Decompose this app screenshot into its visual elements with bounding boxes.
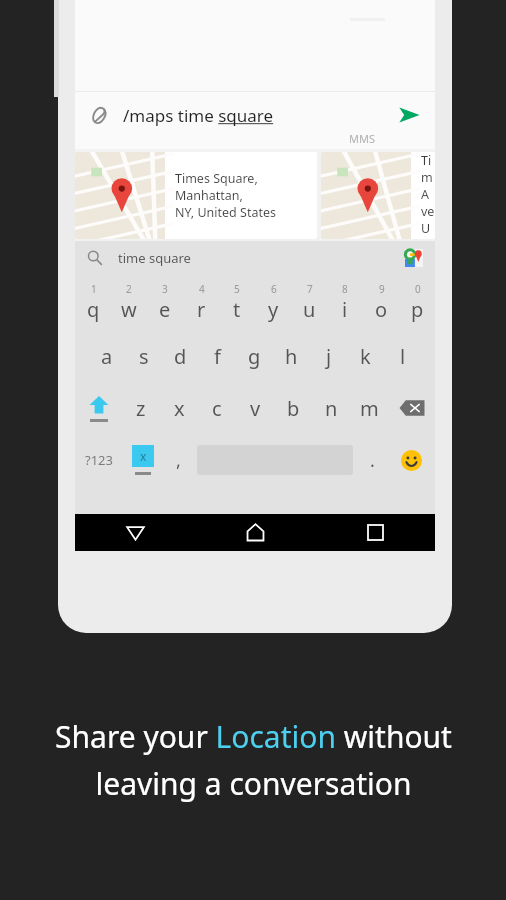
button[interactable]: 6 [255,274,291,330]
staticText: , [176,448,181,473]
button[interactable]: v [236,382,274,434]
button[interactable]: Times Square, Manhattan, NY, United Stat… [75,152,317,239]
staticText: o [375,296,388,323]
staticText: Times Square, Manhattan, NY, United Stat… [175,170,317,221]
button[interactable]: k [347,330,384,382]
staticText: l [400,343,406,370]
staticText: 7 [307,282,313,296]
staticText: u [303,296,316,323]
staticText: f [214,343,221,370]
staticText: MMS [349,131,375,146]
staticText: x [174,395,185,422]
staticText: c [212,395,222,422]
staticText: e [159,296,171,323]
staticText: y [268,296,279,323]
button[interactable]: Recents [315,514,435,551]
button[interactable]: 2 [111,274,147,330]
button[interactable]: Send [383,92,435,138]
staticText: b [287,395,300,422]
staticText: 5 [234,282,240,296]
button[interactable]: Emoji [387,434,435,486]
staticText: 2 [126,282,132,296]
button[interactable]: time square [75,241,435,274]
staticText: 9 [379,282,385,296]
staticText: q [87,296,100,323]
staticText: j [326,343,332,370]
button[interactable]: Attach [75,92,123,138]
button[interactable]: Home [195,514,315,551]
staticText: n [325,395,338,422]
button[interactable]: z [122,382,160,434]
button[interactable]: a [89,330,125,382]
staticText: 0 [415,282,421,296]
button[interactable]: , [163,434,193,486]
staticText: /maps time square [123,104,274,127]
staticText: z [136,395,146,422]
staticText: g [248,343,261,370]
button[interactable]: 7 [291,274,327,330]
button[interactable]: x [160,382,198,434]
staticText: Share your Location without leaving a co… [55,716,452,804]
button[interactable]: 1 [75,274,111,330]
staticText: ?123 [85,451,113,469]
staticText: s [139,343,149,370]
button[interactable]: b [274,382,312,434]
button[interactable]: h [273,330,310,382]
staticText: k [360,343,371,370]
staticText: h [285,343,298,370]
button[interactable]: Back [75,514,195,551]
button[interactable]: d [162,330,199,382]
button[interactable]: s [125,330,162,382]
staticText: 1 [91,282,97,296]
button[interactable]: g [236,330,273,382]
staticText: p [411,296,424,323]
staticText: i [342,296,348,323]
staticText: time square [118,249,191,267]
button[interactable]: Shift [75,382,122,434]
button[interactable]: 3 [147,274,183,330]
staticText: 4 [199,282,205,296]
button[interactable]: 5 [219,274,255,330]
button[interactable]: n [312,382,350,434]
staticText: r [197,296,206,323]
staticText: Tim Ave Uni [421,152,435,239]
button[interactable]: j [310,330,347,382]
button[interactable]: Language [123,434,163,486]
button[interactable]: 9 [363,274,399,330]
staticText: v [250,395,261,422]
button[interactable]: Tim Ave Uni [321,152,435,239]
button[interactable]: 4 [183,274,219,330]
staticText: a [101,343,113,370]
staticText: t [233,296,241,323]
staticText: x [140,448,147,464]
staticText: . [370,448,375,473]
button[interactable]: 0 [399,274,435,330]
staticText: 3 [162,282,168,296]
button[interactable]: ?123 [75,434,123,486]
button[interactable]: f [199,330,236,382]
staticText: w [121,296,137,323]
button[interactable]: 8 [327,274,363,330]
button[interactable]: m [350,382,388,434]
staticText: d [174,343,187,370]
button[interactable]: l [384,330,421,382]
staticText: 6 [271,282,277,296]
button[interactable]: c [198,382,236,434]
staticText: m [360,395,379,422]
button[interactable]: . [357,434,387,486]
button[interactable]: Backspace [388,382,435,434]
staticText: 8 [342,282,348,296]
